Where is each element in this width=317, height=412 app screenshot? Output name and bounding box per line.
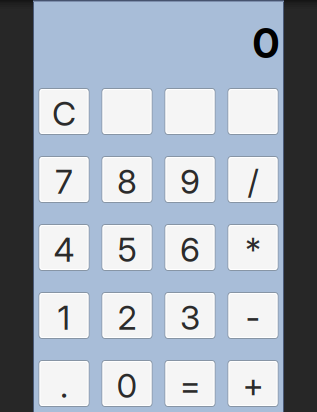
button[interactable]: Blank xyxy=(164,88,215,135)
staticText: 3 xyxy=(180,297,200,338)
button[interactable]: 9 xyxy=(164,156,215,203)
staticText: 0 xyxy=(116,365,137,406)
button[interactable]: 6 xyxy=(164,224,215,271)
button[interactable]: Multiply xyxy=(227,224,278,271)
staticText: 9 xyxy=(180,161,200,202)
staticText: C xyxy=(52,93,76,134)
button[interactable]: 3 xyxy=(164,292,215,339)
staticText: = xyxy=(179,365,200,406)
button[interactable]: Decimal point xyxy=(38,360,89,407)
staticText: 1 xyxy=(57,297,70,338)
button[interactable]: 8 xyxy=(101,156,152,203)
button[interactable]: 0 xyxy=(101,360,152,407)
button[interactable]: Add xyxy=(227,360,278,407)
button[interactable]: Clear xyxy=(38,88,89,135)
button[interactable]: 5 xyxy=(101,224,152,271)
staticText: 4 xyxy=(53,229,74,270)
staticText: - xyxy=(245,297,260,338)
button[interactable]: 1 xyxy=(38,292,89,339)
button[interactable]: 4 xyxy=(38,224,89,271)
button[interactable]: 2 xyxy=(101,292,152,339)
button[interactable]: Subtract xyxy=(227,292,278,339)
button[interactable]: Divide xyxy=(227,156,278,203)
staticText: / xyxy=(247,161,258,202)
button[interactable]: Equals xyxy=(164,360,215,407)
staticText: . xyxy=(60,365,68,406)
button[interactable]: Blank xyxy=(227,88,278,135)
staticText: 2 xyxy=(117,297,136,338)
staticText: * xyxy=(245,229,261,270)
staticText: 7 xyxy=(55,161,73,202)
staticText: 0 xyxy=(252,18,279,68)
button[interactable]: 7 xyxy=(38,156,89,203)
button[interactable]: Blank xyxy=(101,88,152,135)
staticText: 6 xyxy=(180,229,200,270)
staticText: + xyxy=(242,365,263,406)
staticText: 5 xyxy=(117,229,136,270)
staticText: 8 xyxy=(117,161,137,202)
